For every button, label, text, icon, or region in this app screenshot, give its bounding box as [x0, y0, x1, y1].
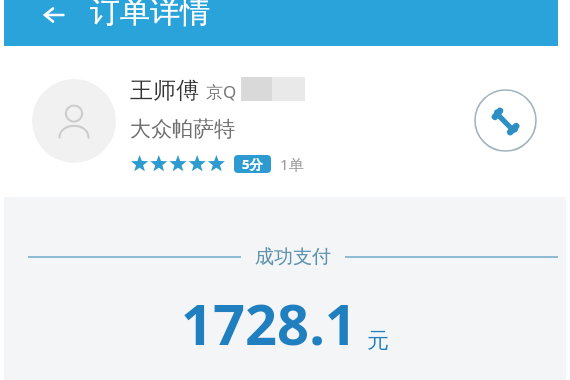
staticText: 成功支付: [255, 245, 331, 269]
staticText: 元: [367, 327, 389, 355]
button[interactable]: 王师傅: [0, 46, 570, 197]
staticText: 京Q: [206, 80, 237, 103]
button[interactable]: Back: [34, 0, 74, 35]
button[interactable]: Call driver: [474, 89, 537, 152]
staticText: 5分: [242, 155, 263, 173]
staticText: 1728.1: [181, 285, 357, 361]
staticText: 订单详情: [90, 0, 210, 31]
staticText: 1单: [280, 154, 304, 174]
staticText: 大众帕萨特: [130, 116, 235, 142]
staticText: 王师傅: [130, 76, 199, 105]
